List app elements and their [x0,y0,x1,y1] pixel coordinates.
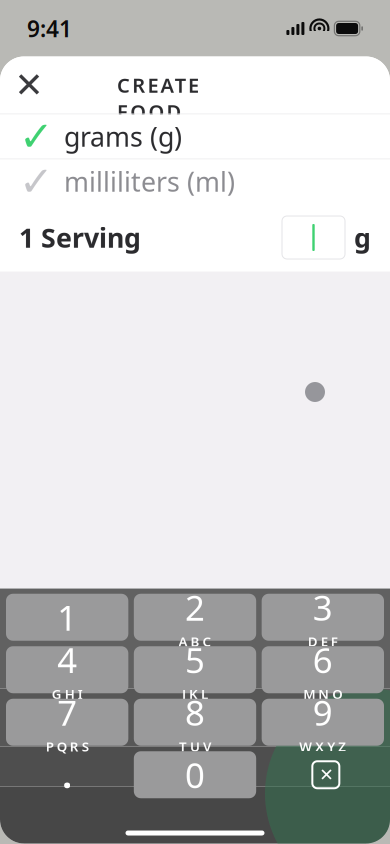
staticText: ✓ [19,158,54,205]
staticText: grams (g) [64,119,182,154]
staticText: 9:41 [27,13,72,43]
staticText: G H I [52,685,83,703]
staticText: 4 [57,637,77,683]
button[interactable]: 7 [6,699,128,746]
staticText: . [62,752,72,798]
button[interactable]: 8 [134,699,256,746]
button[interactable]: 1 [6,594,128,641]
staticText: ✓ [19,113,54,160]
staticText: 0 [185,752,205,798]
button[interactable]: 5 [134,646,256,693]
staticText: ✕ [319,765,334,785]
staticText: M N O [303,685,342,703]
staticText: T U V [179,737,211,755]
staticText: 7 [57,689,77,735]
staticText: 1 [57,594,77,640]
staticText: CREATE FOOD [117,72,273,98]
staticText: 5 [185,637,205,683]
button[interactable]: 6 [262,646,384,693]
staticText: g [354,220,371,255]
button[interactable]: 3 [262,594,384,641]
button[interactable]: 4 [6,646,128,693]
button[interactable]: ✓ [0,114,390,158]
button[interactable]: Serving amount [282,216,345,259]
staticText: 1 Serving [19,220,141,255]
staticText: J K L [182,685,208,703]
staticText: D E F [308,632,338,650]
button[interactable]: 0 [134,751,256,798]
staticText: milliliters (ml) [64,164,235,199]
button[interactable]: Delete [262,751,384,798]
staticText: 6 [313,637,333,683]
staticText: P Q R S [46,737,89,755]
button[interactable]: Close [11,67,47,103]
staticText: W X Y Z [299,737,346,755]
staticText: 8 [185,689,205,735]
staticText: A B C [178,632,211,650]
button[interactable]: Decimal point [6,751,128,798]
staticText: ✕ [14,65,43,105]
button[interactable]: 9 [262,699,384,746]
staticText: 9 [313,689,333,735]
staticText: 2 [185,584,205,630]
button[interactable]: 2 [134,594,256,641]
button[interactable]: ✓ [0,159,390,203]
staticText: 3 [313,584,333,630]
